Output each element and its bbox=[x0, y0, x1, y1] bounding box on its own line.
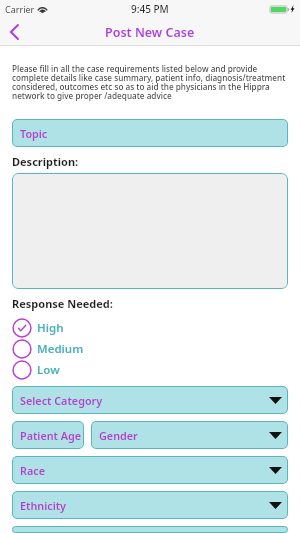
button[interactable]: Low bbox=[12, 359, 288, 380]
staticText: Carrier bbox=[5, 3, 35, 15]
staticText: Patient Age bbox=[20, 428, 81, 443]
button[interactable]: High bbox=[12, 317, 288, 338]
staticText: Select Category bbox=[20, 393, 103, 408]
staticText: Topic bbox=[20, 126, 48, 141]
button[interactable]: Gender bbox=[91, 421, 288, 449]
button[interactable] bbox=[12, 526, 288, 533]
staticText: Race bbox=[20, 463, 45, 478]
button[interactable] bbox=[12, 173, 288, 289]
staticText: Ethnicity bbox=[20, 498, 67, 513]
staticText: Low bbox=[37, 362, 60, 378]
button[interactable]: Select Category bbox=[12, 386, 288, 414]
staticText: Description: bbox=[12, 154, 79, 169]
staticText: 9:45 PM bbox=[131, 2, 169, 16]
button[interactable]: Patient Age bbox=[12, 421, 84, 449]
button[interactable]: Back bbox=[2, 20, 26, 44]
button[interactable]: Race bbox=[12, 456, 288, 484]
staticText: Gender bbox=[99, 428, 138, 443]
button[interactable]: Ethnicity bbox=[12, 491, 288, 519]
button[interactable]: Medium bbox=[12, 338, 288, 359]
staticText: Post New Case bbox=[105, 24, 195, 41]
staticText: Please fill in all the case requirements… bbox=[12, 63, 288, 101]
staticText: High bbox=[37, 320, 64, 336]
staticText: Response Needed: bbox=[12, 296, 113, 311]
button[interactable]: Topic bbox=[12, 119, 288, 147]
staticText: Medium bbox=[37, 341, 84, 357]
